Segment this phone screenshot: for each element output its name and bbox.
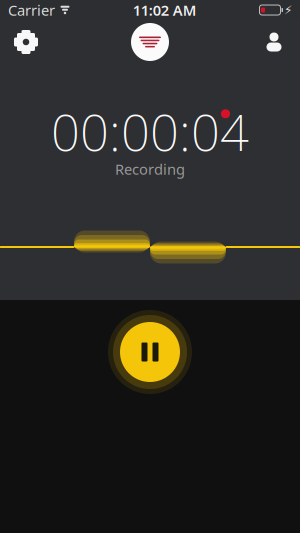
button[interactable]: Pause recording xyxy=(105,307,195,397)
staticText: Carrier xyxy=(8,0,55,20)
staticText: Recording xyxy=(115,159,185,179)
staticText: 00:00:04 xyxy=(51,98,249,165)
button[interactable]: Settings xyxy=(4,20,48,64)
staticText: ⚡︎ xyxy=(284,3,292,17)
button[interactable]: Account xyxy=(252,20,296,64)
staticText: 11:02 AM xyxy=(133,0,197,20)
button[interactable]: Home xyxy=(128,20,172,64)
